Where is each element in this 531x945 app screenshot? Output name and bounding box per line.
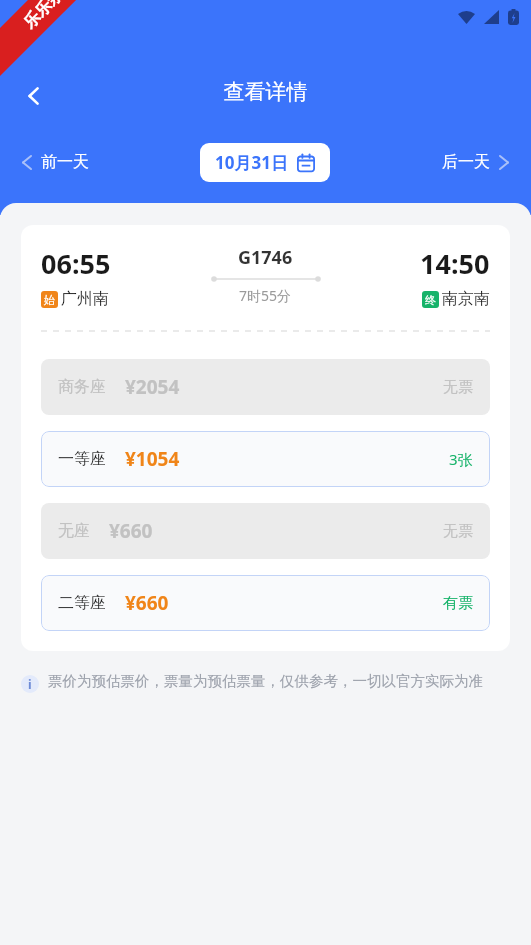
button[interactable]: 无座 xyxy=(41,503,490,559)
staticText: 南京南 xyxy=(442,289,490,309)
staticText: 10月31日 xyxy=(215,151,288,174)
staticText: 终 xyxy=(425,293,436,307)
button[interactable]: 10月31日 xyxy=(200,143,330,182)
staticText: 始 xyxy=(44,293,55,307)
staticText: 后一天 xyxy=(442,152,490,172)
staticText: 乐乐亲测 xyxy=(19,0,79,33)
staticText: 票价为预估票价，票量为预估票量，仅供参考，一切以官方实际为准 xyxy=(48,672,483,690)
staticText: 一等座 xyxy=(58,449,106,469)
staticText: ¥660 xyxy=(125,590,169,616)
staticText: 二等座 xyxy=(58,593,106,613)
staticText: 查看详情 xyxy=(0,79,531,105)
button[interactable]: 商务座 xyxy=(41,359,490,415)
staticText: 广州南 xyxy=(61,289,109,309)
button[interactable]: 后一天 xyxy=(434,146,517,178)
staticText: 06:55 xyxy=(41,245,111,282)
staticText: 14:50 xyxy=(420,245,490,282)
staticText: 商务座 xyxy=(58,377,106,397)
staticText: ¥2054 xyxy=(125,374,180,400)
staticText: 3张 xyxy=(449,449,473,469)
staticText: G1746 xyxy=(238,245,293,270)
staticText: 无票 xyxy=(443,522,473,541)
staticText: ¥660 xyxy=(109,518,153,544)
staticText: ¥1054 xyxy=(125,446,180,472)
button[interactable]: 一等座 xyxy=(41,431,490,487)
staticText: 无座 xyxy=(58,521,90,541)
staticText: i xyxy=(28,676,32,692)
staticText: 有票 xyxy=(443,594,473,613)
staticText: 无票 xyxy=(443,378,473,397)
staticText: 前一天 xyxy=(41,152,89,172)
staticText: 7时55分 xyxy=(239,286,292,305)
button[interactable]: 二等座 xyxy=(41,575,490,631)
button[interactable]: Back xyxy=(10,72,58,120)
button[interactable]: 前一天 xyxy=(14,146,97,178)
